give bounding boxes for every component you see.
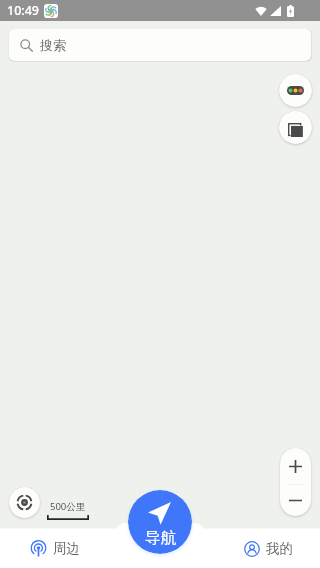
button[interactable]: 搜索 [9,29,311,61]
button[interactable]: 周边 [0,529,110,568]
button[interactable]: My location [9,487,40,518]
staticText: 导航 [145,528,176,548]
button[interactable]: 我的 [216,529,320,568]
staticText: 搜索 [40,37,66,53]
button[interactable]: Zoom in [280,448,311,484]
staticText: 500公里 [50,500,86,513]
button[interactable]: Traffic conditions [279,74,312,107]
button[interactable]: Zoom out [280,485,311,516]
staticText: 我的 [266,540,293,557]
staticText: 10:49 [7,2,40,19]
button[interactable]: 导航 [128,490,192,554]
button[interactable]: Map layers [279,111,312,144]
staticText: 周边 [53,540,80,557]
